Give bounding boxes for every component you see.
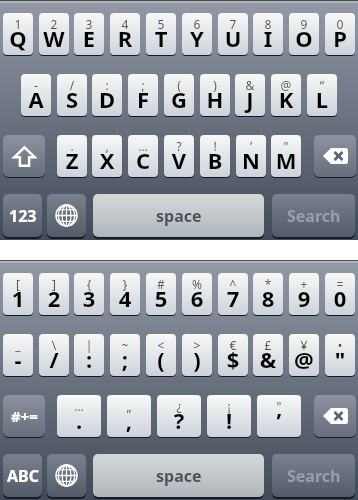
button[interactable]: )	[200, 74, 230, 116]
button[interactable]: Change keyboard	[47, 454, 86, 497]
button[interactable]: Change keyboard	[47, 194, 86, 237]
button[interactable]: "	[257, 395, 301, 437]
button[interactable]: “	[307, 74, 337, 116]
staticText: @	[271, 77, 301, 93]
button[interactable]: #+=	[3, 395, 45, 437]
staticText: 5	[146, 16, 176, 32]
staticText: /	[39, 344, 69, 374]
button[interactable]: 123	[3, 194, 42, 237]
button[interactable]: "	[271, 135, 301, 177]
button[interactable]: Shift	[3, 135, 45, 177]
staticText: 6	[182, 16, 212, 32]
staticText: (	[164, 77, 194, 93]
staticText: S	[57, 84, 87, 114]
button[interactable]: :	[92, 74, 122, 116]
button[interactable]: 5	[146, 13, 176, 55]
button[interactable]: Backspace	[314, 135, 356, 177]
button[interactable]: ^	[218, 273, 248, 315]
button[interactable]: +	[289, 273, 319, 315]
button[interactable]: …	[128, 135, 158, 177]
staticText: B	[200, 145, 230, 175]
button[interactable]: Search	[272, 194, 355, 237]
button[interactable]: Search	[272, 454, 355, 497]
button[interactable]: ABC	[3, 454, 42, 497]
button[interactable]: ;	[128, 74, 158, 116]
button[interactable]: 4	[110, 13, 140, 55]
button[interactable]: ¿	[157, 395, 201, 437]
staticText: 1	[3, 16, 33, 32]
staticText: -	[3, 344, 33, 374]
button[interactable]: ’	[236, 135, 266, 177]
staticText: 3	[74, 16, 104, 32]
button[interactable]: @	[271, 74, 301, 116]
staticText: Z	[57, 145, 87, 175]
button[interactable]: space	[93, 454, 264, 497]
staticText: !	[207, 405, 251, 435]
button[interactable]: .	[57, 135, 87, 177]
staticText: 7	[218, 16, 248, 32]
button[interactable]: £	[253, 334, 283, 376]
staticText: M	[271, 145, 301, 175]
button[interactable]: space	[93, 194, 264, 237]
button[interactable]: ]	[39, 273, 69, 315]
staticText: £	[253, 337, 283, 353]
staticText: -	[21, 77, 51, 93]
button[interactable]: >	[182, 334, 212, 376]
staticText: <	[146, 337, 176, 353]
staticText: U	[218, 23, 248, 53]
staticText: ’	[236, 138, 266, 154]
button[interactable]: „	[107, 395, 151, 437]
staticText: 9	[289, 283, 319, 313]
button[interactable]: \	[39, 334, 69, 376]
button[interactable]: &	[235, 74, 265, 116]
button[interactable]: {	[74, 273, 104, 315]
button[interactable]: 9	[289, 13, 319, 55]
button[interactable]: Backspace	[314, 395, 356, 437]
button[interactable]: ~	[110, 334, 140, 376]
button[interactable]: #	[146, 273, 176, 315]
staticText: @	[289, 344, 319, 374]
button[interactable]: ¥	[289, 334, 319, 376]
button[interactable]: |	[74, 334, 104, 376]
button[interactable]: %	[182, 273, 212, 315]
staticText: ’	[257, 405, 301, 435]
staticText: !	[200, 138, 230, 154]
button[interactable]: 2	[39, 13, 69, 55]
button[interactable]: 1	[3, 13, 33, 55]
button[interactable]: …	[57, 395, 101, 437]
button[interactable]: ?	[164, 135, 194, 177]
button[interactable]: 3	[74, 13, 104, 55]
button[interactable]: =	[325, 273, 355, 315]
button[interactable]: !	[200, 135, 230, 177]
button[interactable]: 6	[182, 13, 212, 55]
staticText: F	[128, 84, 158, 114]
button[interactable]: *	[253, 273, 283, 315]
button[interactable]: _	[3, 334, 33, 376]
staticText: 7	[218, 283, 248, 313]
button[interactable]: ¡	[207, 395, 251, 437]
staticText: }	[110, 276, 140, 292]
staticText: G	[164, 84, 194, 114]
staticText: 8	[253, 16, 283, 32]
staticText: „	[107, 398, 151, 414]
staticText: Q	[3, 23, 33, 53]
button[interactable]: -	[21, 74, 51, 116]
staticText: P	[325, 23, 355, 53]
button[interactable]: 8	[253, 13, 283, 55]
button[interactable]: •	[325, 334, 355, 376]
staticText: Y	[182, 23, 212, 53]
button[interactable]: }	[110, 273, 140, 315]
button[interactable]: (	[164, 74, 194, 116]
button[interactable]: 0	[325, 13, 355, 55]
button[interactable]: 7	[218, 13, 248, 55]
button[interactable]: [	[3, 273, 33, 315]
staticText: ;	[128, 77, 158, 93]
button[interactable]: /	[57, 74, 87, 116]
button[interactable]: <	[146, 334, 176, 376]
staticText: /	[57, 77, 87, 93]
staticText: •	[325, 337, 355, 353]
button[interactable]: €	[218, 334, 248, 376]
staticText: ;	[110, 344, 140, 374]
button[interactable]: ,	[92, 135, 122, 177]
staticText: 123	[9, 205, 37, 227]
